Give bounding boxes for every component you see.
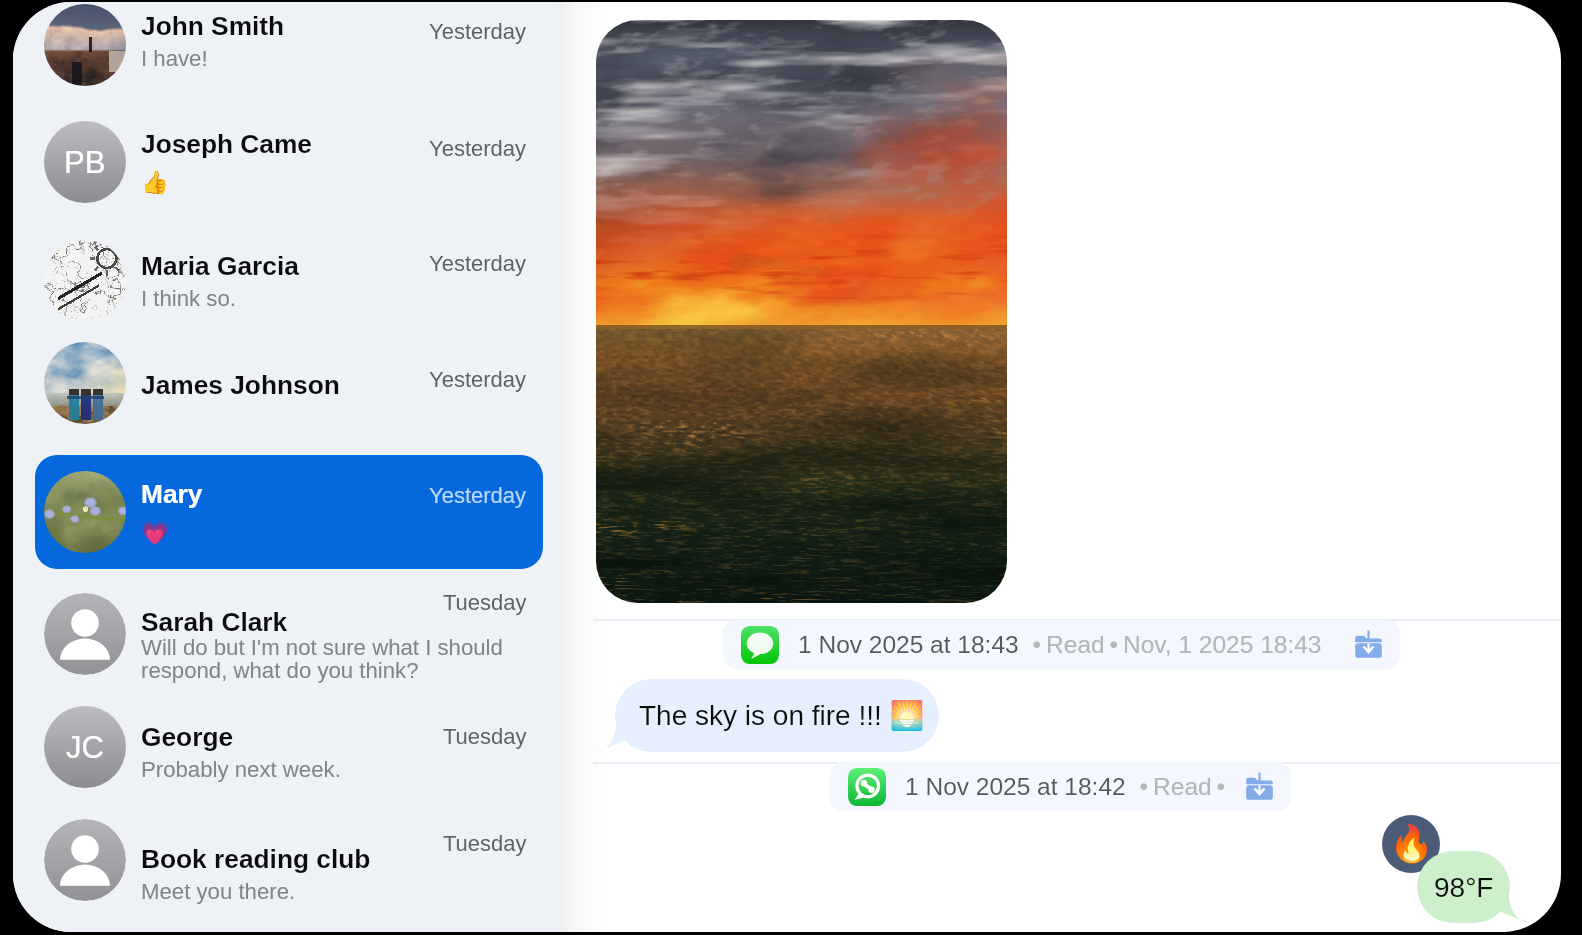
staticText: 🔥 [1389,823,1434,865]
button[interactable] [35,2,543,102]
staticText: Meet you there. [141,879,296,904]
button[interactable]: Fire reaction [1382,815,1440,873]
staticText: 💗 [141,520,169,546]
staticText: 98°F [1434,872,1494,903]
staticText: 1 Nov 2025 at 18:43 [798,631,1019,658]
staticText: Joseph Came [141,129,312,158]
staticText: 1 Nov 2025 at 18:42 [905,773,1126,800]
staticText: Tuesday [443,724,527,749]
staticText: Maria Garcia [141,251,299,280]
staticText: JC [66,730,104,765]
button[interactable] [35,224,543,338]
staticText: Tuesday [443,590,527,615]
staticText: James Johnson [141,370,340,399]
button[interactable] [35,326,543,440]
button[interactable]: The sky is on fire !!! 🌅 [615,679,939,752]
staticText: The sky is on fire !!! 🌅 [639,699,925,732]
button[interactable]: 1 Nov 2025 at 18:43 [723,620,1400,669]
staticText: 👍 [141,169,169,195]
staticText: Probably next week. [141,757,341,782]
staticText: Tuesday [443,831,527,856]
staticText: • Read • Nov, 1 2025 18:43 [1019,631,1322,658]
button[interactable]: 1 Nov 2025 at 18:42 [830,762,1291,811]
staticText: PB [64,145,106,180]
button[interactable] [35,803,543,917]
button[interactable] [35,455,543,569]
staticText: Sarah Clark [141,607,288,636]
staticText: John Smith [141,11,285,40]
staticText: Yesterday [429,251,527,276]
staticText: Yesterday [429,367,527,392]
staticText: • Read • [1126,773,1235,800]
staticText: George [141,722,234,751]
staticText: Yesterday [429,19,527,44]
button[interactable] [35,105,543,219]
button[interactable]: Save to archive [1245,772,1274,801]
button[interactable] [35,577,543,691]
button[interactable]: 98°F [1417,851,1510,923]
staticText: Yesterday [429,136,527,161]
staticText: Will do but I'm not sure what I should [141,635,503,660]
staticText: Book reading club [141,844,371,873]
staticText: respond, what do you think? [141,658,419,683]
button[interactable] [35,690,543,804]
staticText: Mary [141,479,203,508]
staticText: I have! [141,46,208,71]
staticText: I think so. [141,286,236,311]
button[interactable]: Save to archive [1354,630,1383,659]
staticText: Yesterday [429,483,527,508]
